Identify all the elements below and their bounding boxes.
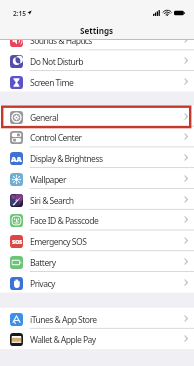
button[interactable]: iTunes & App Store [0, 308, 194, 329]
staticText: AA [11, 154, 22, 164]
button[interactable]: Sounds & Haptics [0, 29, 194, 50]
staticText: Face ID & Passcode [30, 215, 99, 227]
button[interactable]: Battery [0, 251, 194, 272]
staticText: Battery [30, 257, 56, 269]
staticText: Screen Time [30, 77, 74, 89]
button[interactable]: General [0, 106, 194, 127]
button[interactable]: Screen Time [0, 71, 194, 92]
button[interactable]: Control Center [0, 126, 194, 147]
button[interactable]: AA [0, 147, 194, 168]
staticText: Emergency SOS [30, 236, 87, 248]
staticText: Wallet & Apple Pay [30, 334, 96, 346]
staticText: SOS [12, 238, 22, 246]
staticText: Wallpaper [30, 174, 66, 186]
staticText: Do Not Disturb [30, 56, 83, 68]
button[interactable]: Face ID & Passcode [0, 209, 194, 230]
staticText: Settings [80, 25, 114, 36]
staticText: 2:15 [13, 9, 27, 18]
staticText: Siri & Search [30, 195, 74, 207]
staticText: iTunes & App Store [30, 314, 97, 326]
button[interactable]: Do Not Disturb [0, 50, 194, 71]
staticText: General [30, 112, 58, 124]
staticText: Display & Brightness [30, 153, 103, 165]
button[interactable]: Wallet & Apple Pay [0, 328, 194, 349]
staticText: Privacy [30, 278, 55, 290]
button[interactable]: Siri & Search [0, 189, 194, 210]
staticText: Control Center [30, 132, 82, 144]
staticText: Sounds & Haptics [30, 35, 92, 47]
button[interactable]: SOS [0, 230, 194, 251]
button[interactable]: Privacy [0, 272, 194, 293]
button[interactable]: Wallpaper [0, 168, 194, 189]
